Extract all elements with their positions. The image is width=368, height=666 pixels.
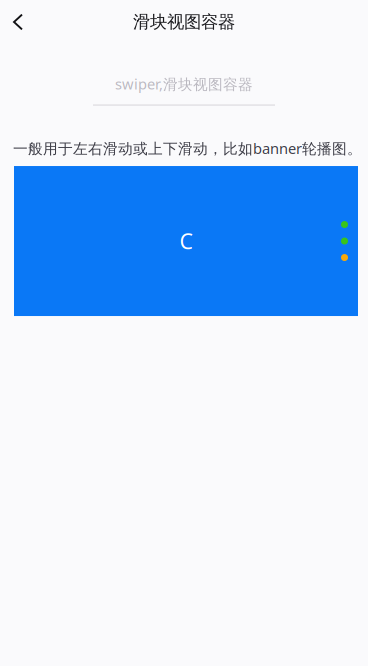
staticText: 滑块视图容器 bbox=[133, 11, 235, 33]
staticText: 一般用于左右滑动或上下滑动，比如banner轮播图。 bbox=[13, 139, 362, 158]
button[interactable]: Back bbox=[1, 0, 35, 44]
staticText: C bbox=[179, 227, 192, 255]
staticText: swiper,滑块视图容器 bbox=[115, 74, 253, 94]
